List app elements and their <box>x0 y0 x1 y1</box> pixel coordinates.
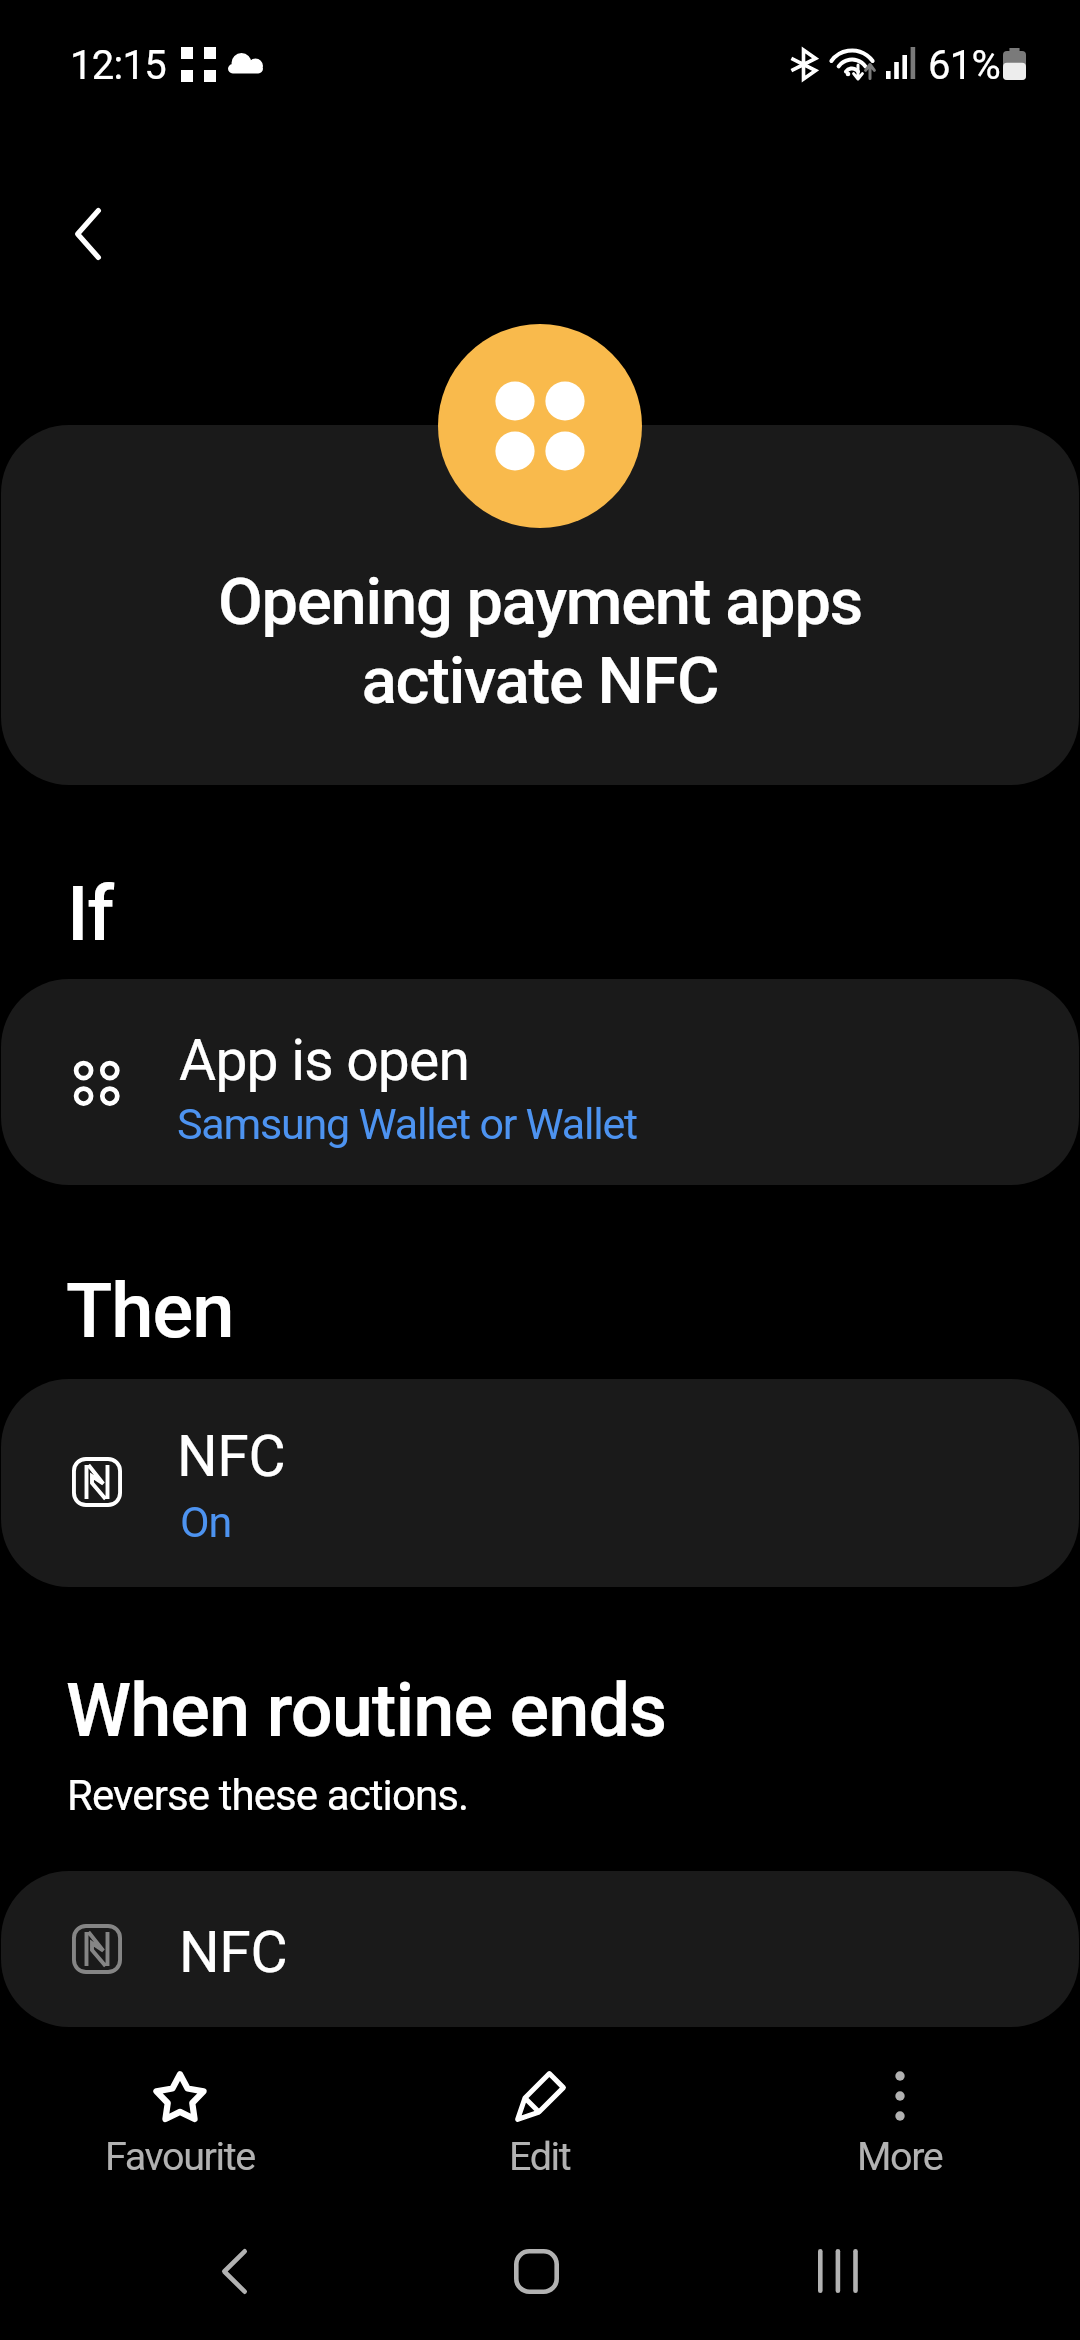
staticText: NFC <box>179 1919 288 1986</box>
staticText: Then <box>66 1266 234 1355</box>
staticText: When routine ends <box>66 1667 667 1754</box>
staticText: Favourite <box>105 2133 255 2179</box>
staticText: 12:15 <box>70 42 167 89</box>
button[interactable]: Home <box>456 2214 616 2328</box>
button[interactable]: Opening payment apps activate NFC <box>1 425 1079 785</box>
staticText: On <box>180 1497 231 1547</box>
button[interactable]: Back <box>28 173 148 295</box>
staticText: Opening payment apps activate NFC <box>1 564 1079 719</box>
button[interactable]: NFC <box>1 1871 1079 2027</box>
button[interactable]: App is open <box>1 979 1079 1185</box>
staticText: Samsung Wallet or Wallet <box>177 1099 637 1149</box>
staticText: Edit <box>509 2133 571 2179</box>
staticText: 61% <box>928 42 1001 89</box>
button[interactable]: Edit <box>360 2043 720 2208</box>
staticText: App is open <box>179 1027 470 1094</box>
button[interactable]: NFC <box>1 1379 1079 1587</box>
staticText: Reverse these actions. <box>67 1771 469 1820</box>
button[interactable]: More <box>720 2043 1080 2208</box>
staticText: If <box>67 869 113 958</box>
staticText: More <box>857 2133 943 2179</box>
button[interactable]: Favourite <box>0 2043 360 2208</box>
staticText: NFC <box>177 1423 286 1490</box>
button[interactable]: Recent apps <box>759 2214 919 2328</box>
button[interactable]: Back <box>154 2214 314 2328</box>
